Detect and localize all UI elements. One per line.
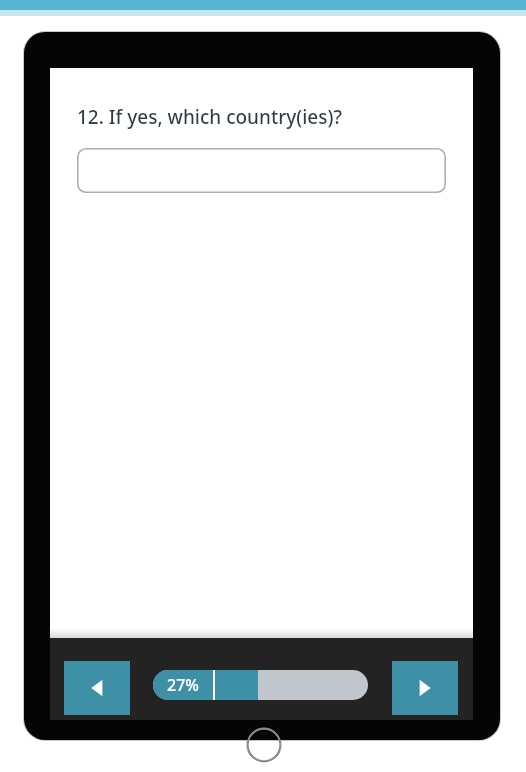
- button[interactable]: 27%: [153, 670, 368, 700]
- button[interactable]: [77, 148, 446, 193]
- staticText: 12. If yes, which country(ies)?: [77, 104, 342, 130]
- button[interactable]: Home: [246, 727, 282, 763]
- button[interactable]: Previous: [64, 661, 130, 715]
- button[interactable]: Next: [392, 661, 458, 715]
- staticText: 27%: [167, 674, 199, 696]
